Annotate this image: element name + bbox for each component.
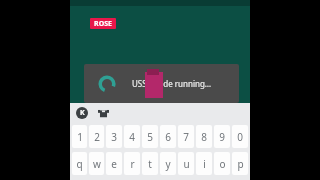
- staticText: u: [183, 157, 190, 171]
- staticText: 2: [94, 130, 100, 144]
- button[interactable]: y: [160, 152, 176, 175]
- staticText: o: [219, 157, 226, 171]
- button[interactable]: 8: [196, 125, 212, 148]
- staticText: 8: [201, 130, 207, 144]
- staticText: i: [203, 157, 206, 171]
- button[interactable]: Keyboard settings: [76, 107, 88, 119]
- button[interactable]: q: [72, 152, 87, 175]
- staticText: 5: [147, 130, 153, 144]
- staticText: K: [80, 108, 85, 118]
- button[interactable]: 0: [232, 125, 248, 148]
- staticText: q: [76, 157, 83, 171]
- staticText: p: [237, 157, 244, 171]
- button[interactable]: 9: [214, 125, 230, 148]
- staticText: ROSE: [94, 19, 112, 29]
- button[interactable]: 6: [160, 125, 176, 148]
- staticText: 6: [165, 130, 171, 144]
- staticText: e: [111, 157, 117, 171]
- button[interactable]: i: [196, 152, 212, 175]
- button[interactable]: o: [214, 152, 230, 175]
- staticText: 4: [129, 130, 135, 144]
- button[interactable]: r: [124, 152, 140, 175]
- button[interactable]: Stickers: [97, 107, 110, 120]
- button[interactable]: p: [232, 152, 248, 175]
- button[interactable]: 1: [72, 125, 87, 148]
- staticText: 3: [111, 130, 117, 144]
- button[interactable]: w: [89, 152, 104, 175]
- button[interactable]: t: [142, 152, 158, 175]
- staticText: 9: [219, 130, 225, 144]
- staticText: t: [148, 157, 152, 171]
- staticText: y: [165, 157, 171, 171]
- button[interactable]: 3: [106, 125, 122, 148]
- button[interactable]: 2: [89, 125, 104, 148]
- button[interactable]: 4: [124, 125, 140, 148]
- staticText: USSD code running…: [132, 78, 212, 89]
- button[interactable]: e: [106, 152, 122, 175]
- button[interactable]: 5: [142, 125, 158, 148]
- staticText: w: [93, 157, 101, 171]
- staticText: r: [130, 157, 135, 171]
- button[interactable]: u: [178, 152, 194, 175]
- staticText: 0: [237, 130, 243, 144]
- staticText: 1: [77, 130, 83, 144]
- button[interactable]: 7: [178, 125, 194, 148]
- button[interactable]: ROSE: [90, 18, 116, 29]
- staticText: 7: [183, 130, 189, 144]
